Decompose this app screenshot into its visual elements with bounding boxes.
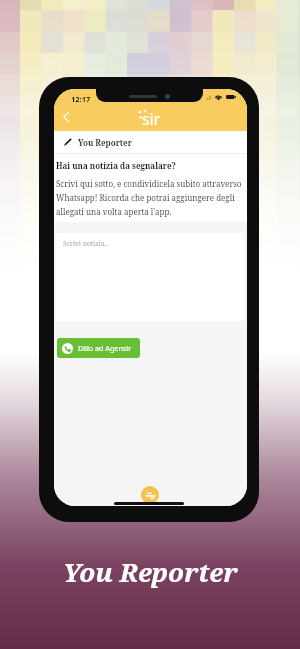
button[interactable]: Scrivi notizia...	[56, 233, 244, 321]
staticText: You Reporter	[78, 137, 132, 148]
staticText: Dillo ad Agensir	[78, 343, 132, 353]
button[interactable]: Menu	[141, 486, 159, 504]
button[interactable]: Dillo ad Agensir	[57, 338, 140, 358]
staticText: Scrivi notizia...	[63, 239, 110, 248]
button[interactable]: Back	[55, 106, 77, 128]
staticText: Scrivi qui sotto, e condividicela subito…	[56, 178, 242, 218]
staticText: 12:17	[71, 94, 91, 104]
button[interactable]: You Reporter	[54, 131, 247, 153]
staticText: sir	[142, 108, 160, 130]
staticText: You Reporter	[63, 554, 238, 589]
staticText: Hai una notizia da segnalare?	[56, 160, 176, 171]
